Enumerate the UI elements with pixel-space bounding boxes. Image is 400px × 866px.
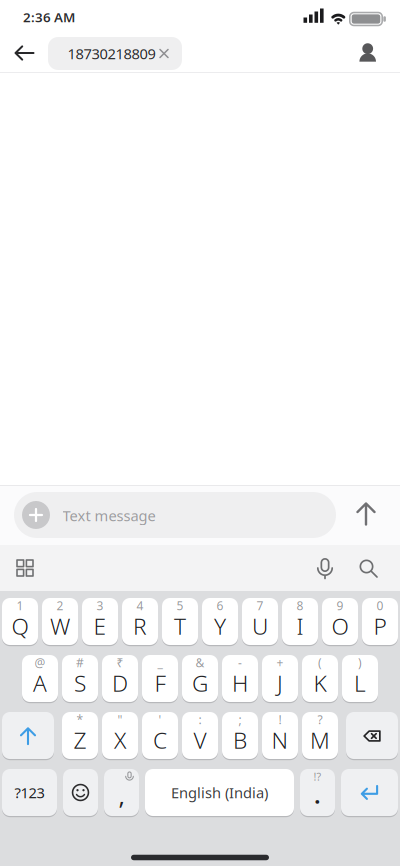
staticText: Z bbox=[73, 725, 86, 755]
staticText: , bbox=[118, 780, 124, 811]
button[interactable]: ; bbox=[222, 712, 258, 759]
staticText: 7 bbox=[256, 597, 263, 613]
staticText: ₹ bbox=[116, 654, 123, 670]
staticText: B bbox=[233, 725, 247, 755]
staticText: ) bbox=[358, 654, 362, 670]
button[interactable]: ( bbox=[302, 655, 338, 702]
staticText: _ bbox=[157, 654, 162, 670]
button[interactable]: 5 bbox=[162, 598, 198, 645]
staticText: L bbox=[354, 668, 366, 698]
button[interactable] bbox=[12, 46, 37, 60]
staticText: Text message bbox=[62, 506, 155, 525]
button[interactable]: 8 bbox=[282, 598, 318, 645]
staticText: W bbox=[50, 611, 70, 641]
staticText: M bbox=[310, 725, 330, 755]
staticText: U bbox=[252, 611, 268, 641]
staticText: D bbox=[112, 668, 128, 698]
button[interactable]: , bbox=[104, 769, 139, 816]
staticText: P bbox=[373, 611, 386, 641]
staticText: H bbox=[232, 668, 248, 698]
staticText: S bbox=[74, 668, 86, 698]
button[interactable]: + bbox=[262, 655, 298, 702]
button[interactable]: 7 bbox=[242, 598, 278, 645]
button[interactable]: ' bbox=[142, 712, 178, 759]
button[interactable]: 6 bbox=[202, 598, 238, 645]
button[interactable]: " bbox=[102, 712, 138, 759]
button[interactable]: ? bbox=[302, 712, 338, 759]
staticText: E bbox=[93, 611, 106, 641]
staticText: * bbox=[76, 711, 83, 727]
button[interactable] bbox=[63, 769, 98, 816]
staticText: A bbox=[33, 668, 47, 698]
staticText: F bbox=[154, 668, 165, 698]
staticText: ? bbox=[317, 711, 322, 727]
button[interactable]: ! bbox=[262, 712, 298, 759]
staticText: 2:36 AM bbox=[23, 8, 75, 26]
button[interactable]: # bbox=[62, 655, 98, 702]
button[interactable] bbox=[356, 502, 376, 525]
staticText: 9 bbox=[336, 597, 343, 613]
staticText: V bbox=[193, 725, 206, 755]
button[interactable] bbox=[315, 557, 335, 579]
staticText: 3 bbox=[96, 597, 103, 613]
staticText: & bbox=[195, 654, 204, 670]
staticText: T bbox=[174, 611, 186, 641]
staticText: 2 bbox=[56, 597, 63, 613]
staticText: + bbox=[276, 654, 283, 670]
button[interactable]: 18730218809 bbox=[48, 37, 182, 70]
button[interactable]: 0 bbox=[362, 598, 398, 645]
staticText: . bbox=[314, 779, 321, 810]
staticText: C bbox=[153, 725, 167, 755]
button[interactable]: : bbox=[182, 712, 218, 759]
button[interactable]: 3 bbox=[82, 598, 118, 645]
staticText: 18730218809 bbox=[67, 44, 155, 63]
staticText: ?123 bbox=[14, 783, 44, 802]
staticText: ' bbox=[158, 711, 161, 727]
staticText: 5 bbox=[176, 597, 183, 613]
staticText: O bbox=[331, 611, 348, 641]
staticText: K bbox=[313, 668, 326, 698]
staticText: Y bbox=[214, 611, 226, 641]
button[interactable]: & bbox=[182, 655, 218, 702]
button[interactable]: * bbox=[62, 712, 98, 759]
button[interactable] bbox=[359, 43, 377, 62]
button[interactable]: 2 bbox=[42, 598, 78, 645]
staticText: R bbox=[133, 611, 147, 641]
button[interactable]: ) bbox=[342, 655, 378, 702]
staticText: # bbox=[76, 654, 84, 670]
button[interactable]: English (India) bbox=[145, 769, 294, 816]
button[interactable] bbox=[22, 501, 50, 529]
staticText: G bbox=[192, 668, 208, 698]
button[interactable]: - bbox=[222, 655, 258, 702]
button[interactable]: ?123 bbox=[2, 769, 57, 816]
staticText: 6 bbox=[216, 597, 223, 613]
button[interactable]: ₹ bbox=[102, 655, 138, 702]
staticText: 1 bbox=[16, 597, 23, 613]
staticText: : bbox=[198, 711, 201, 727]
staticText: 8 bbox=[296, 597, 303, 613]
staticText: 0 bbox=[376, 597, 383, 613]
staticText: ( bbox=[318, 654, 322, 670]
staticText: - bbox=[238, 654, 242, 670]
staticText: I bbox=[296, 611, 303, 641]
button[interactable] bbox=[16, 559, 34, 577]
button[interactable]: 9 bbox=[322, 598, 358, 645]
button[interactable]: Text message bbox=[14, 492, 336, 538]
staticText: N bbox=[271, 725, 288, 755]
button[interactable] bbox=[346, 712, 398, 759]
staticText: ! bbox=[278, 711, 281, 727]
button[interactable]: 4 bbox=[122, 598, 158, 645]
button[interactable] bbox=[358, 558, 377, 577]
button[interactable]: @ bbox=[22, 655, 58, 702]
button[interactable]: _ bbox=[142, 655, 178, 702]
staticText: English (India) bbox=[171, 783, 268, 802]
button[interactable] bbox=[2, 712, 54, 759]
button[interactable] bbox=[341, 769, 398, 816]
staticText: X bbox=[114, 725, 126, 755]
staticText: ; bbox=[238, 711, 241, 727]
button[interactable]: 1 bbox=[2, 598, 38, 645]
staticText: " bbox=[117, 711, 122, 727]
staticText: @ bbox=[34, 654, 45, 670]
staticText: !? bbox=[313, 769, 321, 784]
button[interactable]: !? bbox=[300, 769, 335, 816]
